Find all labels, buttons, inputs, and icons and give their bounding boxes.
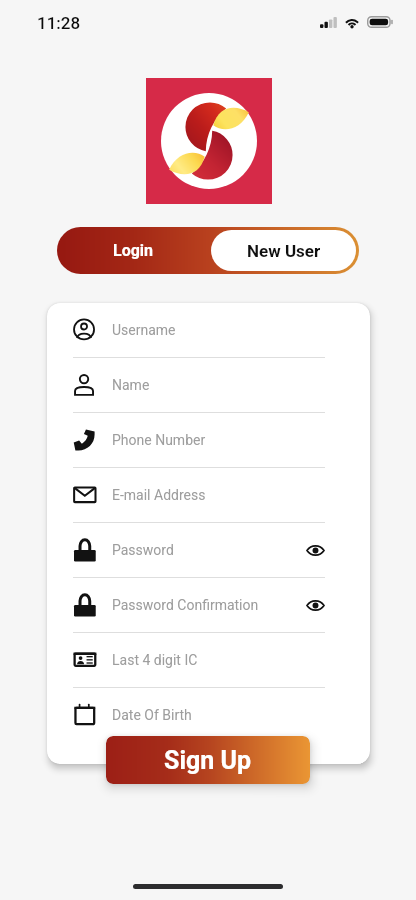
staticText: Sign Up: [164, 746, 252, 775]
staticText: Date Of Birth: [112, 707, 192, 723]
button[interactable]: Username: [73, 303, 344, 358]
button[interactable]: Sign Up: [106, 736, 310, 784]
button[interactable]: Date Of Birth: [73, 688, 344, 743]
button[interactable]: Password Confirmation: [73, 578, 344, 633]
staticText: Username: [112, 322, 176, 338]
staticText: New User: [247, 241, 321, 261]
button[interactable]: Show password: [302, 537, 328, 563]
button[interactable]: Show password: [302, 592, 328, 618]
button[interactable]: Phone Number: [73, 413, 344, 468]
staticText: Last 4 digit IC: [112, 652, 198, 668]
button[interactable]: Last 4 digit IC: [73, 633, 344, 688]
button[interactable]: E-mail Address: [73, 468, 344, 523]
button[interactable]: Name: [73, 358, 344, 413]
staticText: 11:28: [37, 13, 81, 33]
staticText: Name: [112, 377, 150, 393]
button[interactable]: Password: [73, 523, 344, 578]
staticText: Phone Number: [112, 432, 206, 448]
button[interactable]: Login: [57, 227, 211, 274]
staticText: E-mail Address: [112, 487, 206, 503]
staticText: Password: [112, 542, 174, 558]
button[interactable]: New User: [211, 230, 356, 271]
staticText: Password Confirmation: [112, 597, 259, 613]
staticText: Login: [113, 241, 154, 260]
